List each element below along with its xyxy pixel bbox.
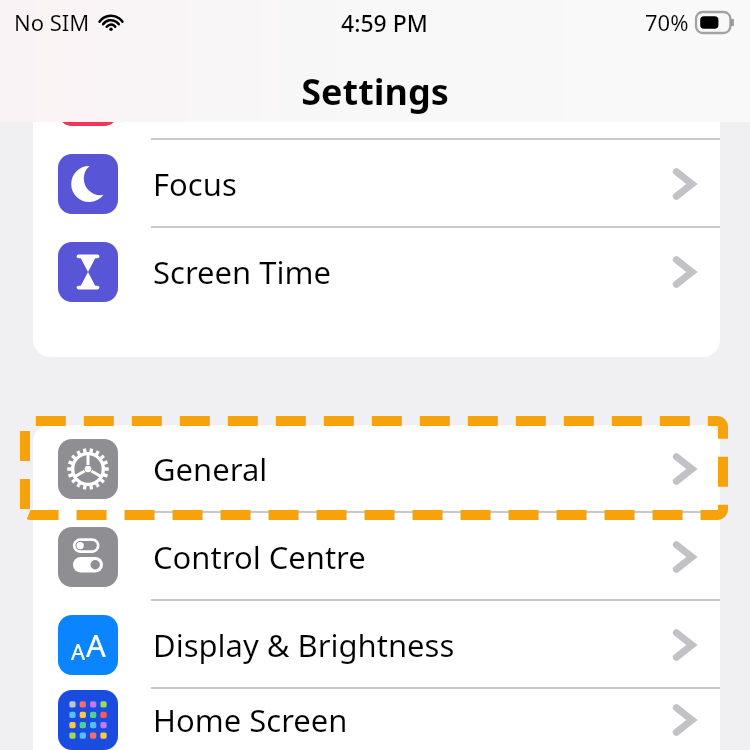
staticText: 4:59 PM [341,7,428,38]
staticText: Display & Brightness [153,624,455,666]
staticText: Settings [301,67,449,116]
button[interactable]: Control Centre [33,513,720,601]
staticText: Focus [153,163,237,205]
staticText: A [86,624,106,666]
staticText: Screen Time [153,251,331,293]
staticText: Home Screen [153,699,348,741]
staticText: General [153,448,268,490]
button[interactable]: Screen Time [33,228,720,316]
button[interactable]: Focus [33,140,720,228]
staticText: Control Centre [153,536,366,578]
staticText: A [71,636,86,666]
staticText: 70% [645,7,689,37]
staticText: No SIM [14,7,90,37]
button[interactable]: Home Screen [33,689,720,750]
button[interactable]: General [33,425,720,513]
button[interactable]: Sounds [33,52,720,140]
button[interactable]: A [33,601,720,689]
